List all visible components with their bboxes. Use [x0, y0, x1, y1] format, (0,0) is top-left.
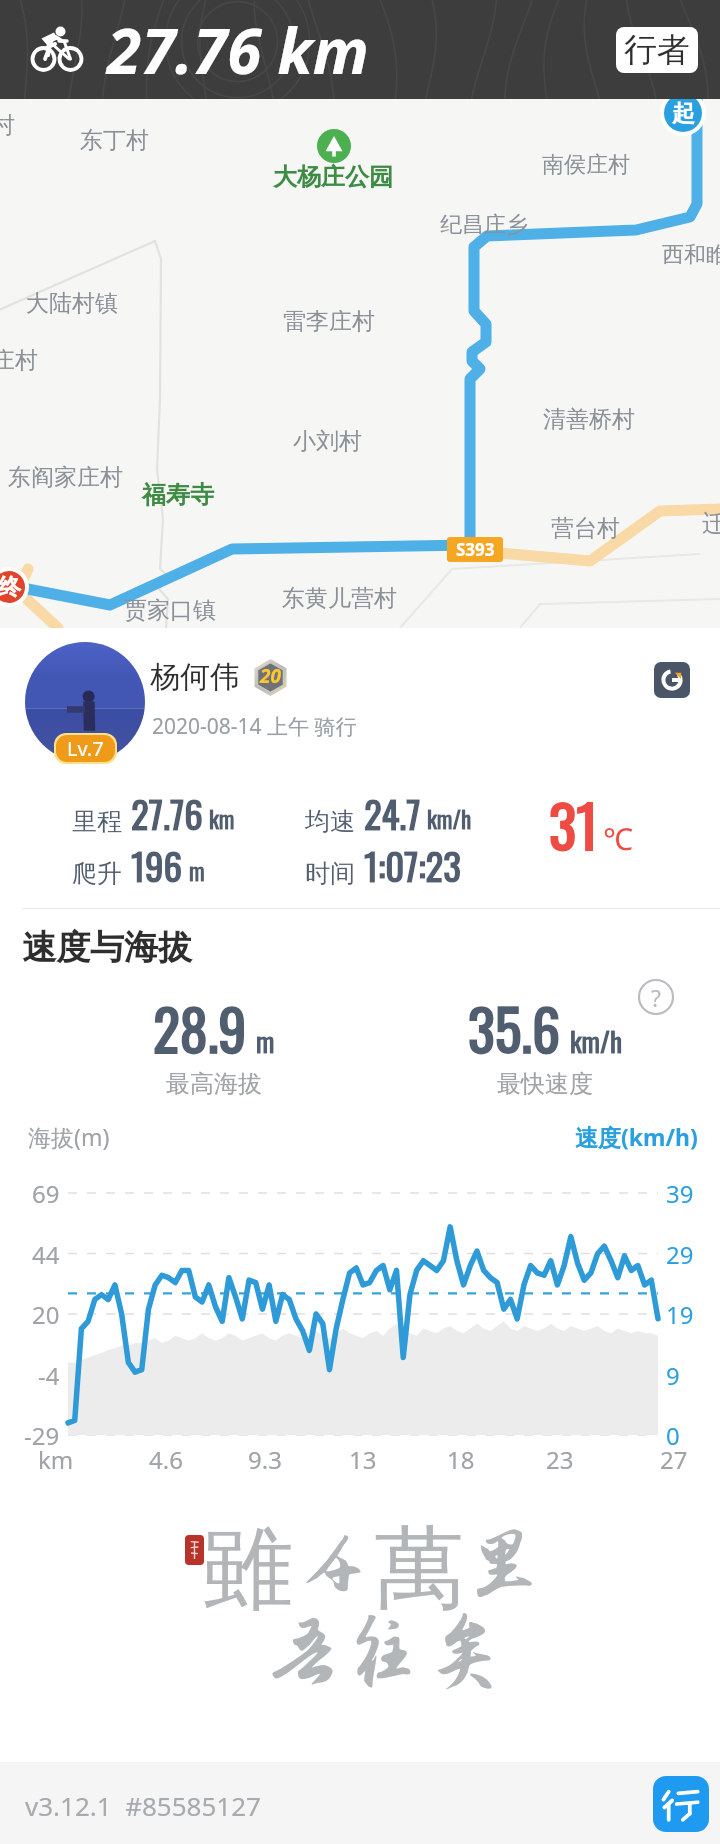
staticText: 23 [546, 1443, 574, 1476]
staticText: 南侯庄村 [542, 151, 630, 179]
staticText: 20 [260, 663, 281, 689]
staticText: 24.7 [364, 786, 421, 841]
staticText: 最高海拔 [166, 1069, 262, 1099]
staticText: 31 [549, 782, 598, 866]
button[interactable]: Help [637, 978, 675, 1016]
button[interactable]: Share to Garmin [654, 662, 690, 698]
staticText: 20 [32, 1298, 60, 1331]
staticText: 9.3 [248, 1443, 282, 1476]
staticText: Lv.7 [67, 735, 104, 762]
staticText: 迁 [702, 509, 720, 538]
staticText: 均速 [305, 806, 355, 837]
staticText: 终 [0, 573, 21, 602]
staticText: 0 [666, 1419, 680, 1452]
staticText: 大陆村镇 [26, 289, 118, 318]
staticText: 速度(km/h) [575, 1121, 698, 1152]
staticText: 福寿寺 [142, 480, 214, 510]
staticText: S393 [456, 538, 495, 561]
staticText: v3.12.1 #85585127 [25, 1788, 261, 1823]
staticText: m [256, 1021, 275, 1061]
staticText: 小刘村 [293, 427, 362, 456]
staticText: 29 [666, 1238, 694, 1271]
staticText: 1:07:23 [364, 838, 461, 893]
staticText: km [38, 1443, 74, 1476]
staticText: 雖千萬里 [203, 1512, 545, 1625]
staticText: 纪昌庄乡 [440, 211, 528, 239]
staticText: 速度与海拔 [22, 926, 192, 969]
staticText: 里程 [72, 806, 122, 837]
staticText: 庄村 [0, 346, 38, 375]
staticText: 最快速度 [497, 1069, 593, 1099]
staticText: ℃ [603, 818, 633, 859]
staticText: 东黄儿营村 [282, 584, 397, 613]
staticText: 东丁村 [80, 126, 149, 155]
staticText: 44 [32, 1238, 60, 1271]
staticText: 13 [349, 1443, 377, 1476]
staticText: km [209, 802, 235, 836]
staticText: 35.6 [468, 986, 561, 1069]
staticText: -29 [24, 1419, 60, 1452]
staticText: 东阎家庄村 [8, 463, 123, 492]
staticText: 时间 [305, 858, 355, 889]
staticText: 村 [0, 111, 15, 140]
staticText: 19 [666, 1298, 694, 1331]
button[interactable]: App logo [653, 1776, 709, 1832]
staticText: 吾往矣 [262, 1608, 505, 1698]
staticText: 雷李庄村 [283, 307, 375, 336]
staticText: 海拔(m) [28, 1121, 110, 1152]
staticText: ? [651, 982, 661, 1013]
staticText: 69 [32, 1177, 60, 1210]
staticText: 营台村 [551, 514, 620, 543]
button[interactable]: 行者 [616, 27, 698, 73]
staticText: m [189, 854, 205, 888]
staticText: 行者 [624, 29, 690, 71]
staticText: 爬升 [72, 858, 122, 889]
staticText: km/h [427, 802, 472, 836]
staticText: 18 [447, 1443, 475, 1476]
staticText: 27.76 km [107, 8, 369, 92]
staticText: 4.6 [149, 1443, 183, 1476]
staticText: 大杨庄公园 [273, 162, 393, 192]
staticText: 清善桥村 [543, 405, 635, 434]
staticText: -4 [38, 1359, 60, 1392]
staticText: km/h [570, 1021, 622, 1061]
staticText: 9 [666, 1359, 680, 1392]
staticText: 28.9 [153, 986, 247, 1069]
staticText: 西和睢 [662, 241, 720, 269]
staticText: 杨何伟 [150, 658, 240, 696]
staticText: 39 [666, 1177, 694, 1210]
staticText: 196 [131, 838, 183, 893]
staticText: 贾家口镇 [124, 596, 216, 625]
staticText: 27 [660, 1443, 688, 1476]
staticText: 2020-08-14 上午 骑行 [152, 712, 357, 741]
staticText: 27.76 [131, 786, 203, 841]
staticText: 起 [672, 99, 695, 128]
